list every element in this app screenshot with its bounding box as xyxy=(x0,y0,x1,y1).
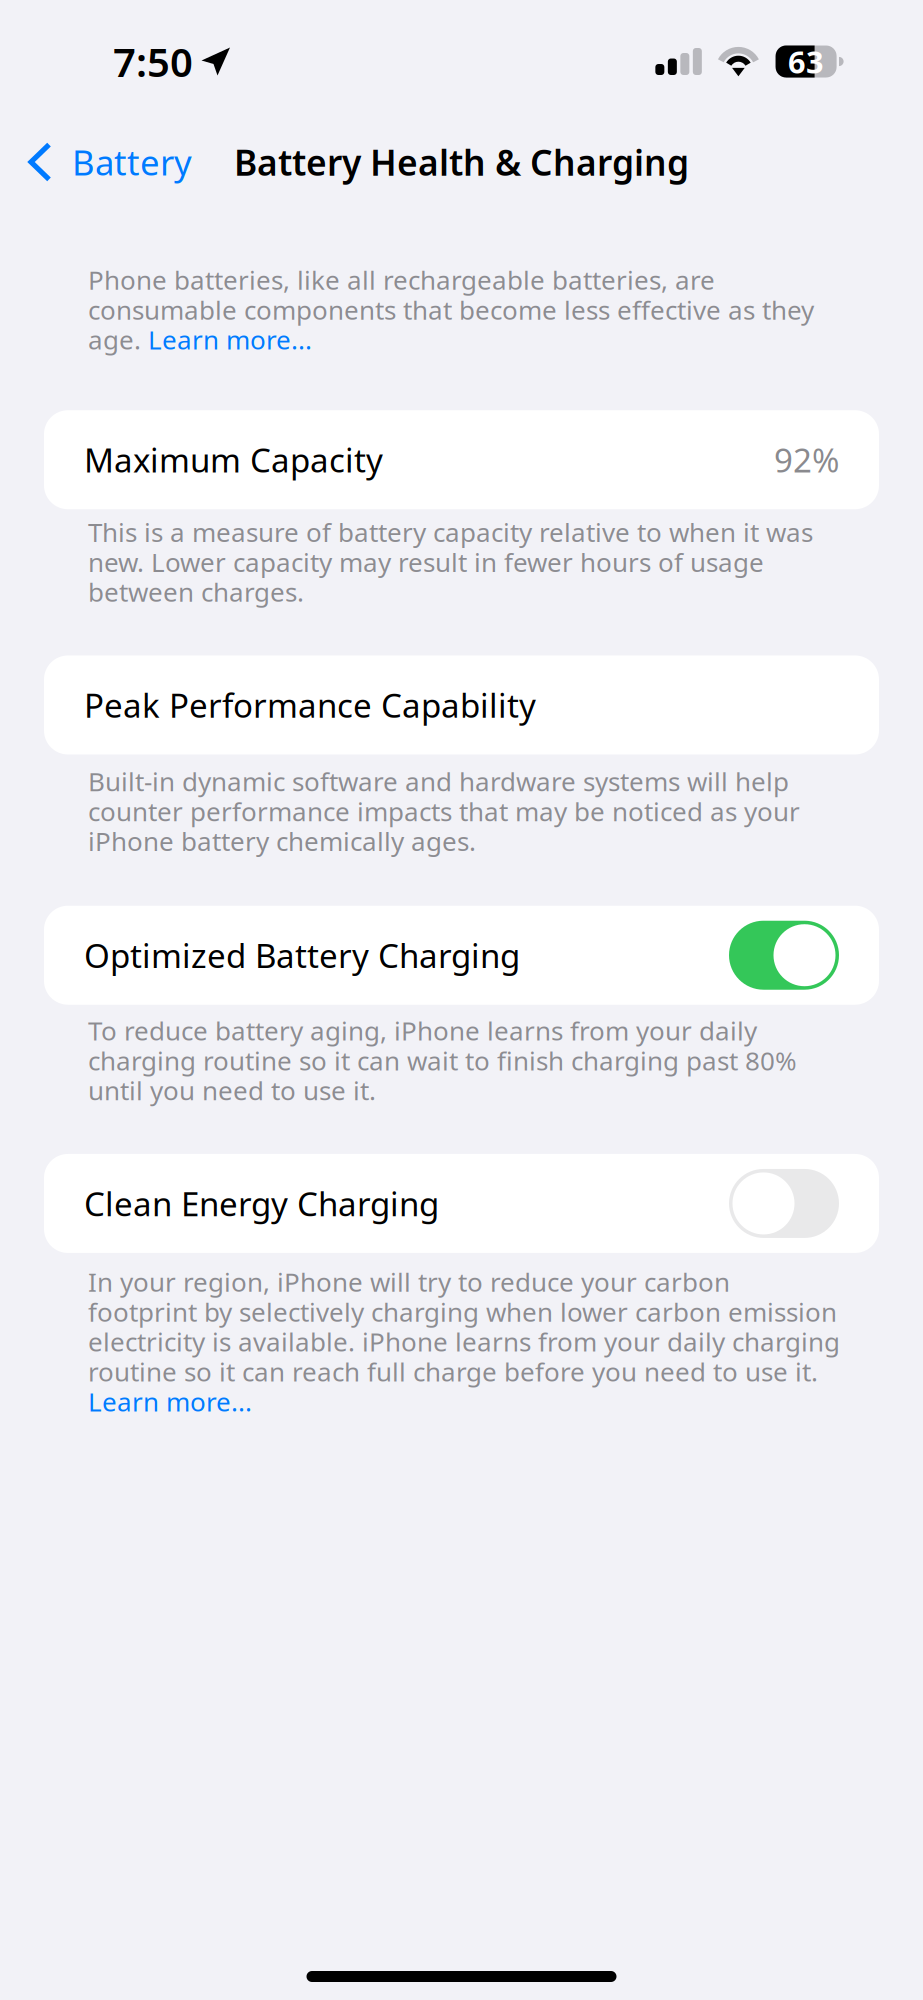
staticText: Battery xyxy=(72,138,192,186)
staticText: new. Lower capacity may result in fewer … xyxy=(88,544,764,579)
staticText: To reduce battery aging, iPhone learns f… xyxy=(88,1013,757,1048)
button[interactable]: Peak Performance Capability xyxy=(44,655,879,754)
staticText: counter performance impacts that may be … xyxy=(88,793,800,829)
staticText: Built-in dynamic software and hardware s… xyxy=(88,763,789,799)
staticText: charging routine so it can wait to finis… xyxy=(88,1043,797,1078)
staticText: Optimized Battery Charging xyxy=(84,933,520,978)
button[interactable]: Battery xyxy=(0,139,300,185)
staticText: iPhone battery chemically ages. xyxy=(88,823,476,859)
staticText: electricity is available. iPhone learns … xyxy=(88,1324,840,1359)
staticText: footprint by selectively charging when l… xyxy=(88,1294,837,1329)
staticText: age. xyxy=(88,322,148,357)
staticText: Learn more... xyxy=(88,1384,252,1419)
button[interactable]: Clean Energy Charging xyxy=(44,1154,879,1253)
staticText: In your region, iPhone will try to reduc… xyxy=(88,1264,730,1299)
staticText: Learn more... xyxy=(148,322,312,357)
staticText: Battery Health & Charging xyxy=(234,138,689,186)
staticText: 63 xyxy=(788,41,824,82)
staticText: until you need to use it. xyxy=(88,1072,376,1108)
staticText: Peak Performance Capability xyxy=(84,682,536,727)
staticText: consumable components that become less e… xyxy=(88,292,814,327)
button[interactable]: Optimized Battery Charging xyxy=(44,906,879,1005)
button[interactable] xyxy=(88,1384,843,1419)
button[interactable]: Maximum Capacity xyxy=(44,410,879,509)
staticText: between charges. xyxy=(88,574,304,609)
staticText: 7:50 xyxy=(113,34,193,89)
staticText: Clean Energy Charging xyxy=(84,1181,439,1226)
staticText: Maximum Capacity xyxy=(84,437,383,482)
staticText: This is a measure of battery capacity re… xyxy=(88,514,813,550)
staticText: 92% xyxy=(774,437,839,482)
button[interactable]: age. xyxy=(88,322,843,357)
staticText: routine so it can reach full charge befo… xyxy=(88,1354,818,1389)
staticText: Phone batteries, like all rechargeable b… xyxy=(88,262,715,297)
